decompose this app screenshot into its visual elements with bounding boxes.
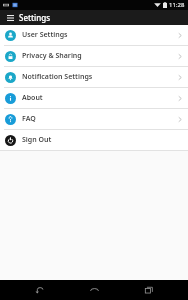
staticText: Notification Settings	[22, 72, 93, 82]
staticText: 11:28	[169, 1, 185, 9]
staticText: About	[22, 93, 43, 103]
button[interactable]: Notification Settings	[0, 67, 188, 87]
staticText: User Settings	[22, 30, 68, 40]
button[interactable]: Sign Out	[0, 130, 188, 150]
staticText: Settings	[19, 12, 51, 23]
button[interactable]: Open navigation menu	[4, 12, 16, 24]
button[interactable]: FAQ	[0, 109, 188, 129]
button[interactable]: Home	[78, 280, 110, 300]
staticText: Privacy & Sharing	[22, 51, 82, 61]
button[interactable]: Back	[23, 280, 55, 300]
staticText: FAQ	[22, 114, 36, 124]
button[interactable]: User Settings	[0, 25, 188, 45]
button[interactable]: Privacy & Sharing	[0, 46, 188, 66]
button[interactable]: Recent apps	[133, 280, 165, 300]
button[interactable]: About	[0, 88, 188, 108]
staticText: Sign Out	[22, 135, 52, 145]
